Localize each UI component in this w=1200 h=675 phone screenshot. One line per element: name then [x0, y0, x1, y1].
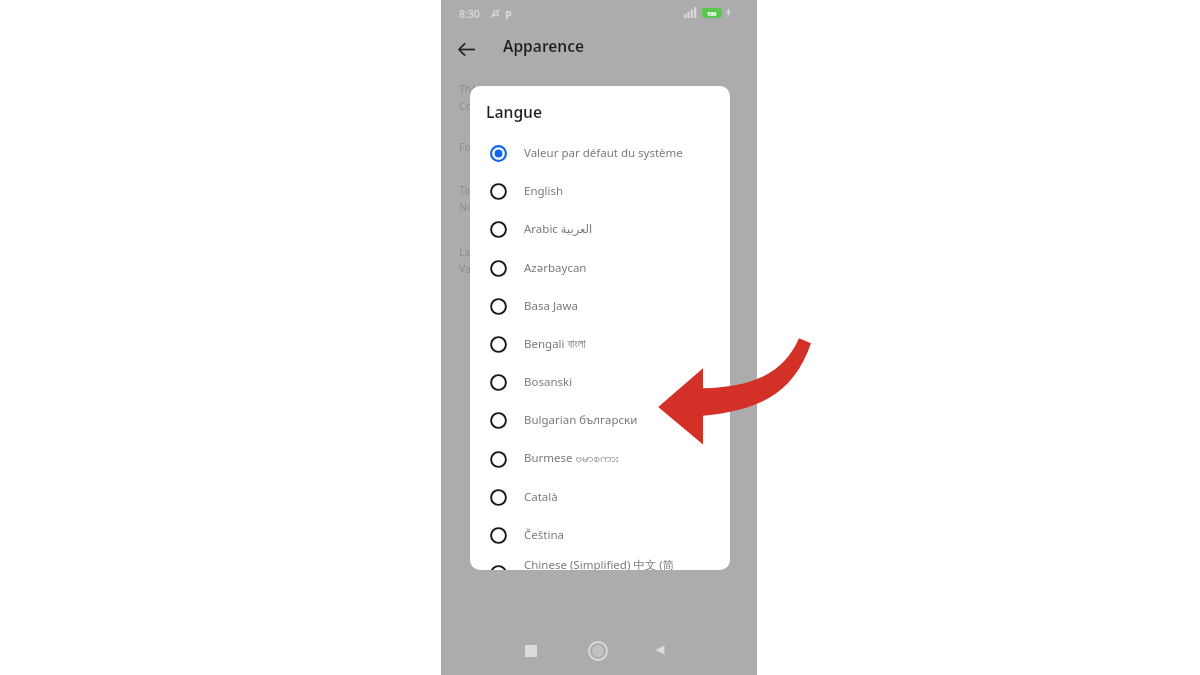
staticText: English — [524, 183, 564, 199]
staticText: Bosanski — [524, 374, 573, 390]
staticText: Català — [524, 489, 558, 505]
staticText: Taille — [459, 183, 484, 197]
staticText: Couleur — [459, 99, 498, 113]
button[interactable]: Català — [470, 478, 730, 516]
staticText: Burmese ဗမာစကား — [524, 450, 619, 468]
button[interactable]: Basa Jawa — [470, 287, 730, 325]
button[interactable]: Back — [449, 32, 483, 66]
button[interactable]: Bosanski — [470, 363, 730, 401]
button[interactable]: Burmese ဗမာစကား — [470, 440, 730, 478]
button[interactable]: Bulgarian български — [470, 401, 730, 439]
staticText: Arabic العربية — [524, 221, 593, 237]
button[interactable]: Chinese (Simplified) 中文 (简 — [470, 554, 730, 570]
staticText: Normale — [459, 200, 503, 214]
staticText: P — [505, 7, 512, 22]
staticText: Bulgarian български — [524, 412, 638, 428]
button[interactable]: Back — [653, 643, 667, 657]
staticText: Chinese (Simplified) 中文 (简 — [524, 557, 675, 570]
other: Annotation arrow — [655, 332, 815, 457]
staticText: Fond — [459, 140, 484, 154]
staticText: Valeur par défaut du système — [524, 145, 683, 161]
button[interactable]: Home — [588, 641, 608, 661]
staticText: Čeština — [524, 527, 564, 543]
staticText: 100 — [707, 10, 717, 17]
staticText: Apparence — [503, 35, 585, 56]
staticText: Azərbaycan — [524, 260, 587, 276]
button[interactable]: Arabic العربية — [470, 210, 730, 248]
button[interactable]: Bengali বাংলা — [470, 325, 730, 363]
staticText: Bengali বাংলা — [524, 336, 586, 352]
staticText: Langue — [486, 101, 543, 122]
button[interactable]: Azərbaycan — [470, 249, 730, 287]
staticText: 8:30 — [459, 7, 480, 21]
staticText: Thème — [459, 82, 493, 96]
button[interactable]: Valeur par défaut du système — [470, 134, 730, 172]
staticText: Valeur — [459, 262, 491, 276]
button[interactable]: Čeština — [470, 516, 730, 554]
staticText: Basa Jawa — [524, 298, 578, 314]
button[interactable]: English — [470, 172, 730, 210]
staticText: Langue — [459, 245, 496, 259]
